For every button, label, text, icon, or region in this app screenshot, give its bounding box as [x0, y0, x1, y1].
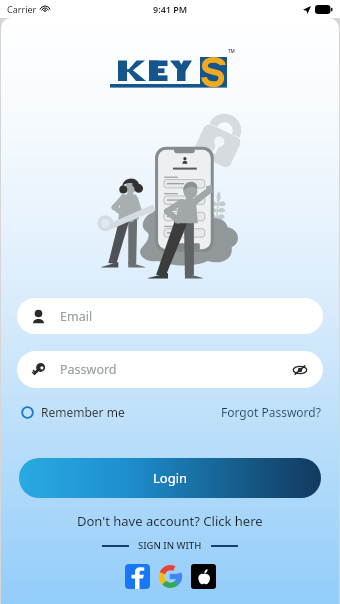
- button[interactable]: Remember me: [21, 401, 125, 423]
- button[interactable]: Sign in with Google: [158, 564, 183, 589]
- button[interactable]: Password: [17, 351, 323, 388]
- staticText: Email: [60, 308, 93, 325]
- staticText: Carrier: [7, 3, 37, 15]
- button[interactable]: Sign in with Apple: [191, 564, 216, 589]
- button[interactable]: Show password: [291, 361, 309, 379]
- button[interactable]: Login: [19, 458, 321, 498]
- button[interactable]: Email: [17, 298, 323, 334]
- staticText: SIGN IN WITH: [138, 539, 202, 552]
- staticText: Password: [60, 361, 117, 378]
- staticText: Login: [153, 469, 188, 487]
- button[interactable]: Don't have account? Click here: [74, 509, 266, 533]
- staticText: 9:41 PM: [153, 3, 188, 15]
- button[interactable]: Sign in with Facebook: [125, 564, 150, 589]
- staticText: TM: [228, 48, 235, 54]
- staticText: Remember me: [41, 404, 125, 420]
- button[interactable]: Forgot Password?: [221, 401, 321, 423]
